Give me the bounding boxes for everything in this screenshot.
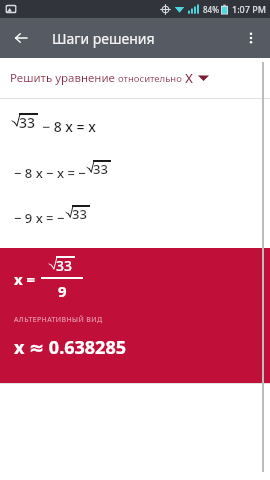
staticText: 33 — [19, 113, 36, 132]
staticText: 33 — [72, 205, 87, 223]
staticText: x = — [14, 269, 36, 289]
button[interactable]: Решить уравнение — [0, 58, 270, 98]
staticText: x ≈ 0.638285 — [14, 335, 126, 360]
staticText: X — [185, 69, 193, 87]
staticText: 84% — [203, 4, 219, 15]
staticText: Шаги решения — [52, 29, 155, 48]
button[interactable]: x = — [0, 248, 270, 383]
staticText: АЛЬТЕРНАТИВНЫЙ ВИД — [14, 315, 103, 325]
button[interactable]: More options — [236, 23, 266, 53]
staticText: Решить уравнение — [10, 70, 118, 86]
staticText: − 9 x = − — [14, 209, 65, 227]
button[interactable]: Back — [6, 23, 36, 53]
staticText: 33 — [93, 160, 108, 178]
staticText: − 8 x = x — [42, 117, 96, 136]
staticText: относительно — [118, 72, 185, 85]
staticText: − 8 x − x = − — [14, 164, 86, 182]
staticText: 9 — [58, 281, 67, 301]
staticText: 33 — [56, 256, 73, 275]
staticText: 1:07 PM — [232, 3, 266, 15]
